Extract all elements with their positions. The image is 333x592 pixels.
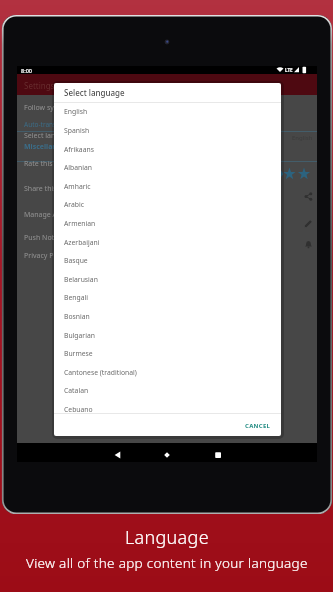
staticText: Share this app [24, 184, 71, 194]
button[interactable]: Afrikaans [54, 140, 281, 159]
button[interactable]: Share this app [24, 180, 71, 198]
button[interactable]: Bulgarian [54, 326, 281, 345]
staticText: Afrikaans [64, 145, 94, 154]
button[interactable]: Albanian [54, 158, 281, 177]
staticText: Push Notifications [24, 233, 84, 243]
button[interactable]: Catalan [54, 381, 281, 400]
button[interactable]: CANCEL [242, 419, 274, 433]
button[interactable]: Burmese [54, 344, 281, 363]
button[interactable]: Arabic [54, 195, 281, 214]
staticText: Bosnian [64, 312, 90, 321]
staticText: Cantonese (traditional) [64, 368, 137, 377]
staticText: Auto-translate [24, 120, 68, 129]
button[interactable]: Cantonese (traditional) [54, 363, 281, 382]
staticText: Bengali [64, 293, 88, 302]
staticText: Select language [24, 131, 77, 141]
staticText: Armenian [64, 219, 96, 228]
button[interactable] [112, 449, 123, 460]
button[interactable] [161, 449, 173, 461]
staticText: View all of the app content in your lang… [26, 554, 308, 572]
button[interactable]: Push Notifications [24, 229, 84, 247]
staticText: Follow system langua [24, 103, 95, 113]
button[interactable]: Azerbaijani [54, 233, 281, 252]
staticText: Select language [64, 87, 125, 98]
staticText: Privacy Policy [24, 251, 69, 261]
staticText: Arabic [64, 200, 85, 209]
staticText: 8:00 [21, 67, 32, 74]
staticText: Basque [64, 256, 88, 265]
staticText: LTE [285, 67, 293, 73]
button[interactable]: English [54, 102, 281, 121]
staticText: Azerbaijani [64, 238, 100, 247]
staticText: Rate this app [24, 159, 67, 169]
button[interactable]: Basque [54, 251, 281, 270]
staticText: Burmese [64, 349, 93, 358]
staticText: Language [125, 525, 209, 549]
button[interactable]: Spanish [54, 121, 281, 140]
button[interactable] [212, 449, 224, 461]
staticText: CANCEL [245, 422, 271, 430]
button[interactable]: Select language [24, 127, 77, 145]
staticText: Cebuano [64, 405, 93, 414]
button[interactable]: Amharic [54, 177, 281, 196]
button[interactable]: Rate this app [24, 155, 67, 173]
button[interactable]: Belarusian [54, 270, 281, 289]
staticText: English [64, 107, 88, 116]
button[interactable]: Cebuano [54, 400, 281, 419]
staticText: Spanish [64, 126, 90, 135]
button[interactable]: Follow system langua [24, 99, 95, 117]
button[interactable]: Bosnian [54, 307, 281, 326]
staticText: Bulgarian [64, 331, 95, 340]
button[interactable]: Manage Account [24, 206, 80, 224]
staticText: Manage Account [24, 210, 80, 220]
staticText: Miscellaneous [24, 142, 74, 152]
button[interactable]: Bengali [54, 288, 281, 307]
staticText: Amharic [64, 182, 91, 191]
button[interactable]: Armenian [54, 214, 281, 233]
staticText: Albanian [64, 163, 93, 172]
staticText: Catalan [64, 386, 89, 395]
button[interactable]: Privacy Policy [24, 247, 69, 265]
staticText: Settings [24, 80, 55, 91]
staticText: Belarusian [64, 275, 98, 284]
